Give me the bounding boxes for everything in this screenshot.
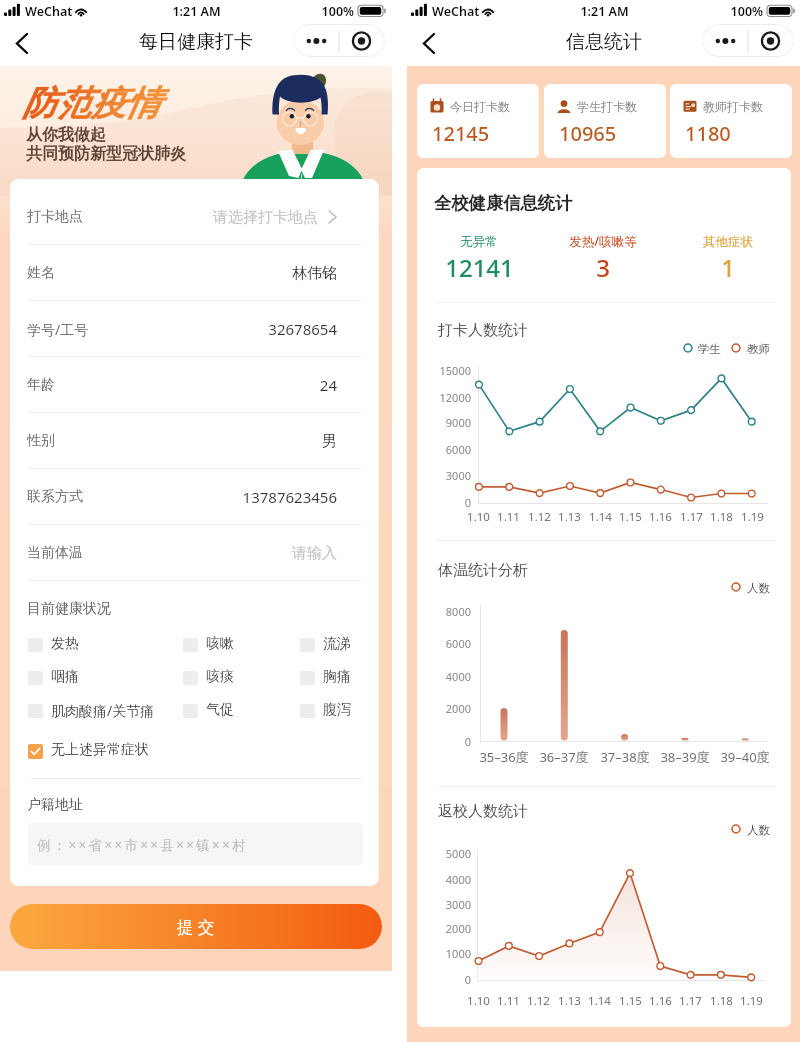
staticText: 6000 — [445, 442, 471, 457]
button[interactable]: 教师打卡数 — [670, 84, 792, 158]
staticText: 2000 — [445, 921, 471, 936]
button[interactable]: More — [702, 24, 794, 57]
staticText: 1:21 AM — [580, 3, 629, 20]
staticText: 15000 — [439, 363, 471, 378]
staticText: 防范疫情 — [22, 82, 160, 125]
staticText: 联系方式 — [27, 488, 83, 506]
button[interactable]: 咳痰 — [183, 665, 293, 691]
staticText: 年龄 — [27, 376, 55, 394]
staticText: 肌肉酸痛/关节痛 — [51, 701, 155, 720]
button[interactable]: 肌肉酸痛/关节痛 — [28, 698, 176, 724]
staticText: 0 — [464, 734, 471, 749]
staticText: 学生 — [698, 342, 721, 356]
staticText: 1180 — [685, 120, 731, 147]
staticText: 13787623456 — [242, 487, 337, 507]
staticText: 1.16 — [649, 993, 672, 1009]
button[interactable]: 气促 — [183, 698, 293, 724]
staticText: 咳痰 — [206, 668, 234, 686]
staticText: 100% — [321, 3, 354, 20]
staticText: 1.10 — [467, 993, 490, 1009]
staticText: 1.13 — [558, 993, 581, 1009]
staticText: 林伟铭 — [292, 264, 337, 283]
staticText: 37–38度 — [600, 748, 650, 766]
button[interactable]: 例：××省××市××县××镇××村 — [28, 823, 363, 865]
staticText: 24 — [319, 375, 337, 395]
staticText: WeChat — [432, 3, 480, 20]
staticText: 1.14 — [588, 993, 611, 1009]
staticText: 1.18 — [710, 509, 733, 525]
staticText: 户籍地址 — [27, 796, 83, 814]
button[interactable]: Back — [413, 26, 447, 66]
button[interactable]: More — [293, 24, 385, 57]
staticText: 8000 — [445, 604, 471, 619]
staticText: 男 — [322, 432, 337, 451]
button[interactable]: 流涕 — [300, 632, 378, 658]
staticText: 请选择打卡地点 — [213, 208, 318, 227]
staticText: 打卡人数统计 — [438, 321, 528, 340]
button[interactable]: 胸痛 — [300, 665, 378, 691]
staticText: 1.19 — [740, 993, 763, 1009]
staticText: 1.11 — [497, 993, 520, 1009]
staticText: 打卡地点 — [27, 208, 83, 226]
button[interactable]: 年龄 — [10, 357, 379, 413]
staticText: 35–36度 — [479, 748, 529, 766]
staticText: 气促 — [206, 701, 234, 719]
staticText: 当前体温 — [27, 544, 83, 562]
staticText: 发热/咳嗽等 — [569, 233, 637, 250]
staticText: 人数 — [747, 581, 770, 595]
button[interactable]: 发热 — [28, 632, 176, 658]
staticText: 12000 — [439, 390, 471, 405]
staticText: 共同预防新型冠状肺炎 — [26, 144, 186, 164]
staticText: 1:21 AM — [172, 3, 221, 20]
staticText: 38–39度 — [660, 748, 710, 766]
button[interactable]: 当前体温 — [10, 525, 379, 581]
staticText: 12145 — [432, 120, 490, 147]
staticText: 1.17 — [679, 993, 702, 1009]
button[interactable]: 今日打卡数 — [417, 84, 539, 158]
staticText: 3000 — [445, 468, 471, 483]
staticText: 1.15 — [619, 509, 642, 525]
staticText: 信息统计 — [566, 30, 642, 54]
button[interactable]: 腹泻 — [300, 698, 378, 724]
staticText: 咽痛 — [51, 668, 79, 686]
button[interactable]: 学号/工号 — [10, 301, 379, 357]
staticText: WeChat — [25, 3, 73, 20]
staticText: 1.15 — [619, 993, 642, 1009]
button[interactable]: 打卡地点 — [10, 189, 379, 245]
staticText: 姓名 — [27, 264, 55, 282]
staticText: 1.13 — [558, 509, 581, 525]
button[interactable]: 提 交 — [10, 904, 382, 949]
staticText: 5000 — [445, 846, 471, 861]
button[interactable]: Back — [6, 26, 40, 66]
staticText: 提 交 — [177, 915, 215, 938]
staticText: 3 — [596, 251, 610, 284]
staticText: 学生打卡数 — [577, 99, 637, 114]
button[interactable]: 咳嗽 — [183, 632, 293, 658]
button[interactable]: 联系方式 — [10, 469, 379, 525]
staticText: 性别 — [27, 432, 55, 450]
staticText: 其他症状 — [703, 234, 753, 250]
staticText: 12141 — [445, 251, 514, 284]
staticText: 1.11 — [497, 509, 520, 525]
staticText: 人数 — [747, 823, 770, 837]
button[interactable]: 性别 — [10, 413, 379, 469]
staticText: 1.10 — [467, 509, 490, 525]
button[interactable]: 学生打卡数 — [544, 84, 666, 158]
staticText: 1.14 — [589, 509, 612, 525]
staticText: 无异常 — [460, 234, 498, 250]
button[interactable]: 无上述异常症状 — [28, 737, 188, 763]
button[interactable]: 姓名 — [10, 245, 379, 301]
staticText: 100% — [730, 3, 763, 20]
staticText: 1.17 — [680, 509, 703, 525]
staticText: 无上述异常症状 — [51, 741, 149, 759]
staticText: 体温统计分析 — [438, 561, 528, 580]
staticText: 学号/工号 — [27, 320, 89, 339]
staticText: 1.12 — [527, 993, 550, 1009]
staticText: 36–37度 — [539, 748, 589, 766]
staticText: 32678654 — [268, 319, 337, 339]
staticText: 0 — [464, 495, 471, 510]
staticText: 例：××省××市××县××镇××村 — [37, 836, 248, 854]
staticText: 2000 — [445, 701, 471, 716]
button[interactable]: 咽痛 — [28, 665, 176, 691]
staticText: 4000 — [445, 872, 471, 887]
